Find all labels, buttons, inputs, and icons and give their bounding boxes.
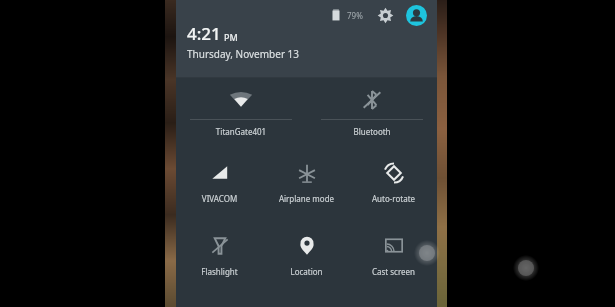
staticText: 79% xyxy=(347,10,363,21)
staticText: Cast screen xyxy=(350,266,437,277)
staticText: PM xyxy=(224,31,238,43)
button[interactable]: TitanGate401 xyxy=(176,82,306,142)
button[interactable]: Bluetooth xyxy=(307,82,437,142)
button[interactable]: Location xyxy=(263,228,350,290)
button[interactable]: Cast screen xyxy=(350,228,437,290)
button[interactable]: Flashlight xyxy=(176,228,263,290)
staticText: TitanGate401 xyxy=(176,126,306,137)
button[interactable]: Auto-rotate xyxy=(350,155,437,217)
staticText: Thursday, November 13 xyxy=(187,47,300,61)
staticText: Airplane mode xyxy=(263,193,350,204)
button[interactable]: Settings xyxy=(373,3,397,27)
staticText: VIVACOM xyxy=(176,193,263,204)
staticText: 4:21 xyxy=(187,22,221,45)
staticText: Bluetooth xyxy=(307,126,437,137)
button[interactable]: VIVACOM xyxy=(176,155,263,217)
button[interactable]: Airplane mode xyxy=(263,155,350,217)
staticText: Auto-rotate xyxy=(350,193,437,204)
button[interactable]: User profile xyxy=(403,2,429,28)
staticText: Flashlight xyxy=(176,266,263,277)
staticText: Location xyxy=(263,266,350,277)
